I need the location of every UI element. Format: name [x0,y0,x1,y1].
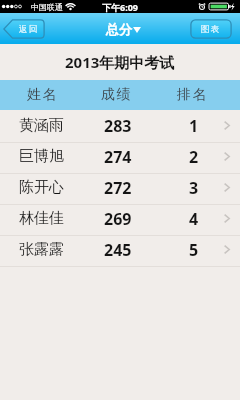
button[interactable]: 黄涵雨 [0,110,240,141]
button[interactable]: 陈开心 [0,172,240,203]
button[interactable]: 林佳佳 [0,203,240,234]
staticText: 图表 [201,24,221,35]
staticText: 姓名 [27,86,58,104]
staticText: 3 [189,177,199,199]
staticText: 林佳佳 [19,209,64,228]
staticText: 2 [189,146,199,168]
staticText: 283 [104,115,132,137]
staticText: 陈开心 [19,178,64,197]
button[interactable]: 返回 [3,19,45,39]
staticText: 成绩 [101,86,132,104]
staticText: 274 [104,146,132,168]
staticText: 245 [104,239,132,261]
staticText: 272 [104,177,132,199]
staticText: 黄涵雨 [19,116,64,135]
staticText: 排名 [177,86,208,104]
staticText: 2013年期中考试 [65,52,175,72]
staticText: 返回 [19,24,39,35]
staticText: 下午6:09 [102,1,138,13]
button[interactable]: 图表 [190,19,232,39]
staticText: 1 [189,115,199,137]
button[interactable]: 巨博旭 [0,141,240,172]
staticText: 4 [189,208,199,230]
staticText: 巨博旭 [19,147,64,166]
staticText: 中国联通 [31,2,63,12]
staticText: 5 [189,239,199,261]
staticText: 张露露 [19,240,64,259]
staticText: 269 [104,208,132,230]
button[interactable]: 张露露 [0,234,240,265]
staticText: 总分 [106,21,132,37]
